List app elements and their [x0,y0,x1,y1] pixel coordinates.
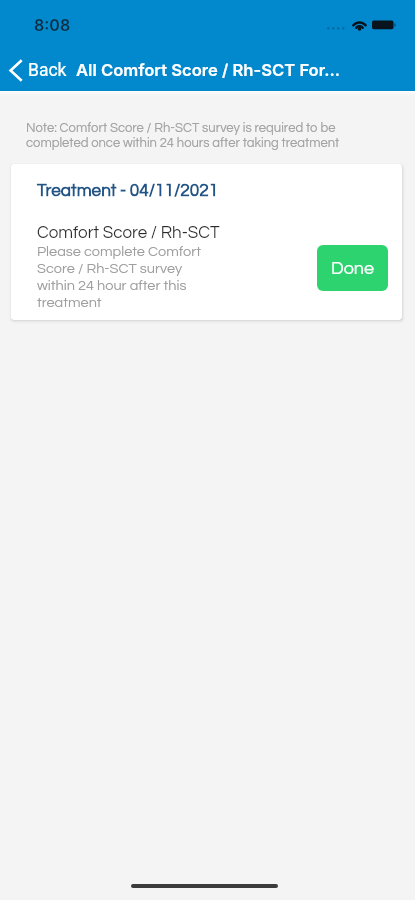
other: Status icons [327,18,397,32]
staticText: 8:08 [34,15,71,34]
button[interactable]: Done [317,245,388,291]
staticText: Treatment - 04/11/2021 [37,182,219,200]
staticText: Done [331,259,375,278]
staticText: Please complete Comfort Score / Rh-SCT s… [37,244,217,310]
staticText: Comfort Score / Rh-SCT [37,224,220,242]
staticText: Note: Comfort Score / Rh-SCT survey is r… [26,121,356,149]
button[interactable]: Back [0,54,73,87]
staticText: All Comfort Score / Rh-SCT For... [76,60,341,80]
staticText: Back [28,60,67,81]
